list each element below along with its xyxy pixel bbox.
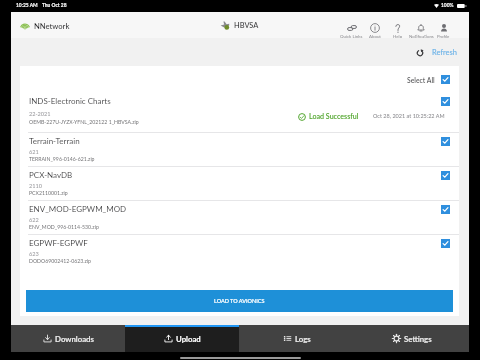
- staticText: OEMB-227U-JYZX-YFNL_202122 1_HBVSA.zip: [29, 119, 139, 125]
- staticText: Help: [393, 34, 403, 39]
- button[interactable]: Profile: [432, 22, 455, 39]
- staticText: INDS-Electronic Charts: [29, 96, 111, 106]
- staticText: Thu Oct 28: [42, 2, 67, 8]
- button[interactable]: Notifications: [409, 22, 432, 39]
- button[interactable]: EGPWF-EGPWF: [20, 235, 459, 268]
- button[interactable]: Help: [386, 22, 409, 39]
- staticText: Terrain-Terrain: [29, 136, 80, 146]
- button[interactable]: LOAD TO AVIONICS: [26, 290, 453, 312]
- staticText: Upload: [176, 334, 201, 343]
- button[interactable]: Select All: [407, 75, 450, 84]
- staticText: Downloads: [55, 334, 94, 343]
- button[interactable]: Settings: [354, 325, 469, 352]
- button[interactable]: About: [363, 22, 386, 39]
- staticText: Oct 28, 2021 at 10:25:22 AM: [373, 113, 445, 120]
- staticText: ENV_MOD_996-0114-530.zip: [29, 224, 99, 230]
- button[interactable]: INDS-Electronic Charts: [20, 92, 459, 132]
- button[interactable]: Refresh: [416, 48, 457, 57]
- staticText: LOAD TO AVIONICS: [214, 298, 265, 305]
- staticText: EGPWF-EGPWF: [29, 238, 88, 248]
- staticText: TERRAIN_996-0146-621.zip: [29, 156, 95, 162]
- staticText: 622: [29, 216, 39, 223]
- staticText: Load Successful: [309, 112, 359, 121]
- staticText: HBVSA: [234, 21, 259, 30]
- button[interactable]: ENV_MOD-EGPWM_MOD: [20, 201, 459, 234]
- staticText: DODO69002412-0623.zip: [29, 258, 91, 264]
- button[interactable]: PCX-NavDB: [20, 167, 459, 200]
- staticText: PCX-NavDB: [29, 170, 73, 180]
- staticText: Logs: [295, 334, 311, 343]
- staticText: Refresh: [432, 48, 457, 57]
- staticText: Settings: [404, 334, 432, 343]
- staticText: Quick Links: [340, 34, 363, 39]
- staticText: PCX2110001.zip: [29, 190, 68, 196]
- staticText: About: [369, 34, 381, 39]
- button[interactable]: Quick Links: [340, 22, 363, 39]
- staticText: Select All: [407, 76, 435, 84]
- staticText: 621: [29, 148, 39, 155]
- button[interactable]: Upload: [125, 325, 239, 352]
- staticText: 100%: [441, 2, 454, 8]
- button[interactable]: Downloads: [11, 325, 125, 352]
- button[interactable]: Terrain-Terrain: [20, 133, 459, 166]
- button[interactable]: Logs: [239, 325, 354, 352]
- staticText: 2110: [29, 182, 42, 189]
- staticText: ENV_MOD-EGPWM_MOD: [29, 204, 127, 214]
- staticText: 22-2021: [29, 110, 51, 117]
- staticText: NNetwork: [34, 21, 70, 30]
- staticText: Profile: [437, 34, 450, 39]
- staticText: Notifications: [409, 34, 432, 39]
- staticText: 623: [29, 250, 39, 257]
- staticText: 10:25 AM: [16, 2, 38, 8]
